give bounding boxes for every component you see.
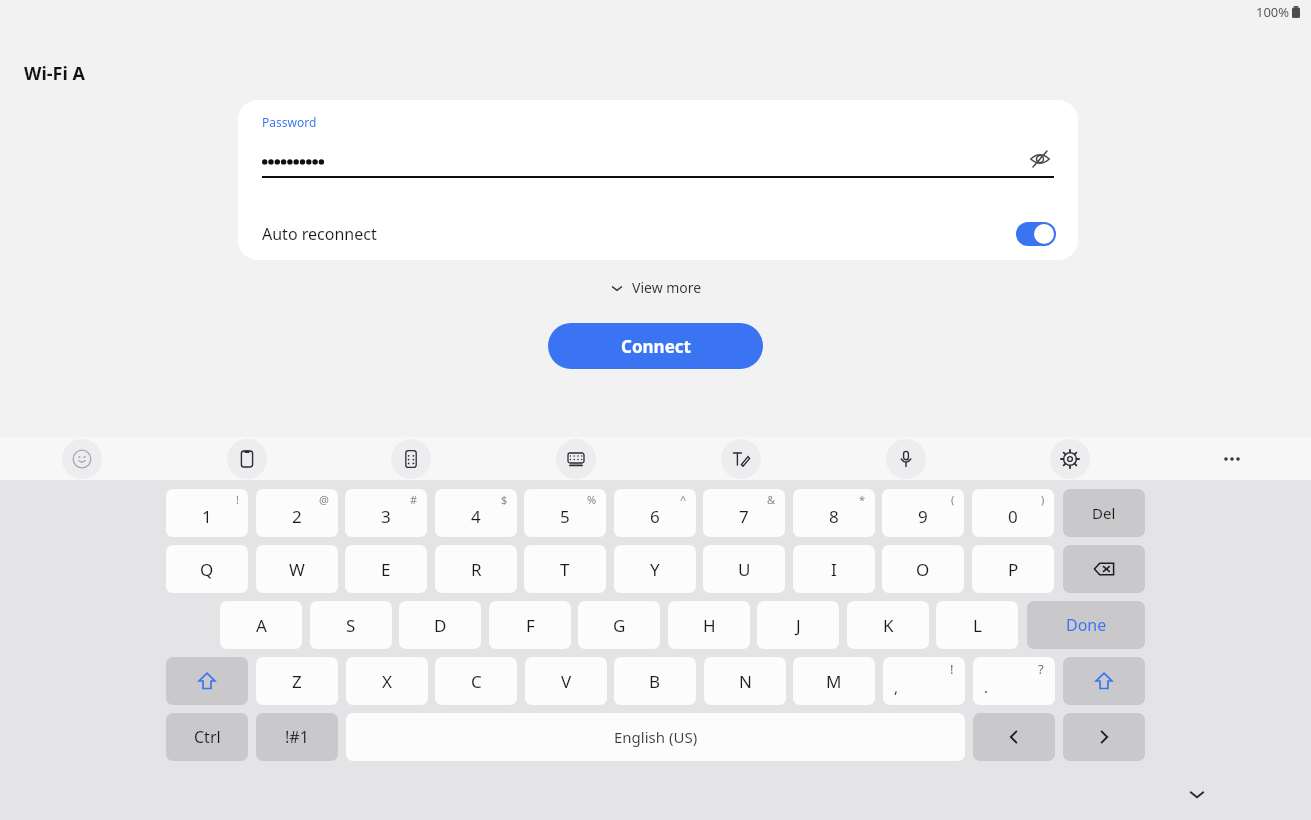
button[interactable]: Del	[1063, 489, 1145, 537]
button[interactable]: K	[847, 601, 929, 649]
staticText: Auto reconnect	[262, 223, 377, 245]
button[interactable]: 4	[435, 489, 517, 537]
button[interactable]: .	[973, 657, 1055, 705]
button[interactable]: 1	[166, 489, 248, 537]
button[interactable]: !#1	[256, 713, 338, 761]
staticText: L	[973, 614, 982, 637]
button[interactable]: 2	[256, 489, 338, 537]
staticText: J	[796, 614, 801, 637]
staticText: )	[1041, 492, 1045, 507]
staticText: English (US)	[614, 727, 698, 747]
staticText: 9	[918, 505, 928, 528]
staticText: F	[526, 614, 535, 637]
button[interactable]: ,	[883, 657, 965, 705]
staticText: C	[471, 670, 482, 693]
button[interactable]: X	[346, 657, 428, 705]
button[interactable]: Shift	[166, 657, 248, 705]
button[interactable]: 6	[614, 489, 696, 537]
button[interactable]: H	[668, 601, 750, 649]
button[interactable]: 9	[882, 489, 964, 537]
button[interactable]: S	[310, 601, 392, 649]
button[interactable]: 5	[524, 489, 606, 537]
button[interactable]: Emoji	[62, 439, 102, 479]
button[interactable]: Handwriting	[721, 439, 761, 479]
staticText: Ctrl	[194, 726, 221, 748]
button[interactable]: Next	[1063, 713, 1145, 761]
button[interactable]: C	[435, 657, 517, 705]
button[interactable]: Z	[256, 657, 338, 705]
button[interactable]: P	[972, 545, 1054, 593]
button[interactable]: View more	[610, 278, 702, 297]
button[interactable]: 7	[703, 489, 785, 537]
button[interactable]: Voice input	[886, 439, 926, 479]
staticText: E	[381, 558, 391, 581]
staticText: *	[859, 492, 866, 507]
button[interactable]: Shift	[1063, 657, 1145, 705]
staticText: X	[382, 670, 392, 693]
staticText: Del	[1092, 503, 1116, 523]
button[interactable]: R	[435, 545, 517, 593]
staticText: Q	[200, 558, 214, 581]
staticText: 3	[381, 505, 391, 528]
button[interactable]: Q	[166, 545, 248, 593]
staticText: U	[738, 558, 751, 581]
button[interactable]: L	[936, 601, 1018, 649]
staticText: Password	[262, 114, 317, 130]
button[interactable]: Previous	[973, 713, 1055, 761]
button[interactable]: O	[882, 545, 964, 593]
button[interactable]: Hide keyboard	[1177, 774, 1217, 814]
staticText: Done	[1066, 614, 1107, 636]
staticText: #	[410, 492, 418, 507]
staticText: M	[826, 670, 842, 693]
staticText: S	[346, 614, 356, 637]
staticText: ,	[894, 677, 899, 697]
button[interactable]: E	[345, 545, 427, 593]
button[interactable]: Connect	[548, 323, 763, 369]
staticText: ?	[1038, 660, 1044, 678]
button[interactable]: B	[614, 657, 696, 705]
staticText: &	[767, 492, 776, 507]
button[interactable]: A	[220, 601, 302, 649]
button[interactable]: I	[793, 545, 875, 593]
button[interactable]: Backspace	[1063, 545, 1145, 593]
button[interactable]: Show password	[1024, 143, 1056, 175]
button[interactable]: F	[489, 601, 571, 649]
button[interactable]: J	[757, 601, 839, 649]
button[interactable]: N	[704, 657, 786, 705]
button[interactable]: M	[793, 657, 875, 705]
staticText: Wi-Fi A	[24, 61, 85, 86]
button[interactable]: Done	[1027, 601, 1145, 649]
staticText: @	[319, 492, 329, 507]
staticText: 100%	[1256, 3, 1290, 21]
staticText: 1	[202, 505, 212, 528]
button[interactable]: Auto reconnect	[238, 214, 1078, 254]
button[interactable]: V	[525, 657, 607, 705]
staticText: O	[916, 558, 930, 581]
button[interactable]: 8	[793, 489, 875, 537]
staticText: B	[649, 670, 661, 693]
staticText: Connect	[621, 335, 691, 358]
button[interactable]: U	[703, 545, 785, 593]
staticText: 6	[650, 505, 660, 528]
staticText: D	[434, 614, 447, 637]
button[interactable]: Number pad	[391, 439, 431, 479]
button[interactable]: Settings	[1050, 439, 1090, 479]
button[interactable]: Keyboard	[556, 439, 596, 479]
button[interactable]: More options	[1212, 439, 1252, 479]
button[interactable]: G	[578, 601, 660, 649]
button[interactable]: W	[256, 545, 338, 593]
staticText: H	[703, 614, 716, 637]
button[interactable]: Ctrl	[166, 713, 248, 761]
button[interactable]: English (US)	[346, 713, 965, 761]
button[interactable]: Y	[614, 545, 696, 593]
staticText: I	[831, 558, 837, 581]
button[interactable]: D	[399, 601, 481, 649]
button[interactable]: Clipboard	[227, 439, 267, 479]
button[interactable]: 0	[972, 489, 1054, 537]
button[interactable]: T	[524, 545, 606, 593]
staticText: A	[256, 614, 267, 637]
staticText: 4	[471, 505, 481, 528]
staticText: 2	[292, 505, 302, 528]
button[interactable]: 3	[345, 489, 427, 537]
staticText: T	[560, 558, 570, 581]
